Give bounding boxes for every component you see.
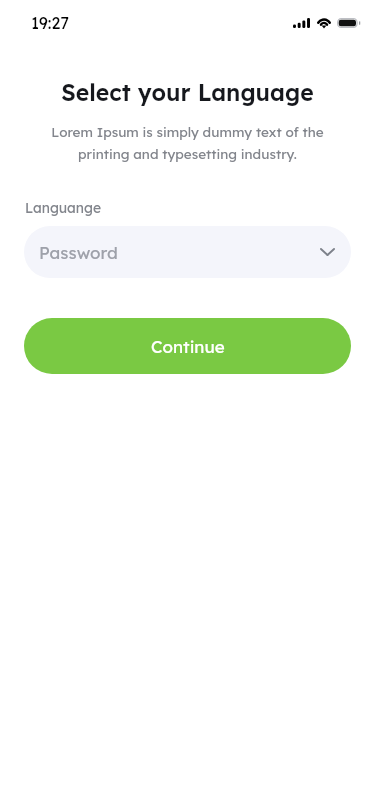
staticText: Languange (25, 199, 102, 216)
staticText: Lorem Ipsum is simply dummy text of the … (0, 123, 375, 162)
staticText: Select your Language (0, 78, 375, 107)
button[interactable]: Password (24, 226, 351, 278)
staticText: Password (39, 242, 118, 263)
staticText: 19:27 (31, 13, 69, 33)
button[interactable]: Continue (24, 318, 351, 374)
staticText: Continue (151, 336, 225, 357)
